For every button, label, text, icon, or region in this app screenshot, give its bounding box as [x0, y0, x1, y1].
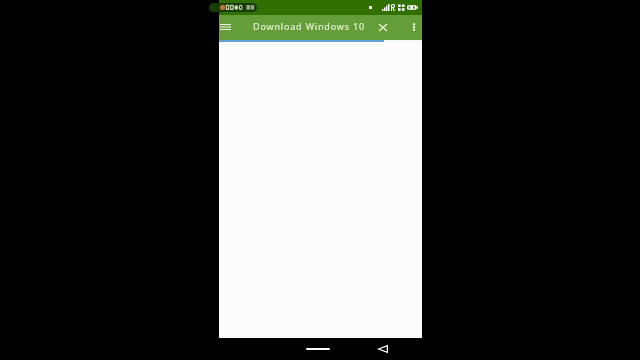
- button[interactable]: More options: [404, 17, 424, 37]
- staticText: Download Windows 10: [253, 20, 365, 32]
- button[interactable]: Open navigation menu: [214, 16, 236, 38]
- button[interactable]: Home: [298, 340, 338, 358]
- button[interactable]: Download Windows 10: [237, 15, 367, 40]
- button[interactable]: Close: [372, 17, 393, 38]
- button[interactable]: Back: [373, 340, 393, 358]
